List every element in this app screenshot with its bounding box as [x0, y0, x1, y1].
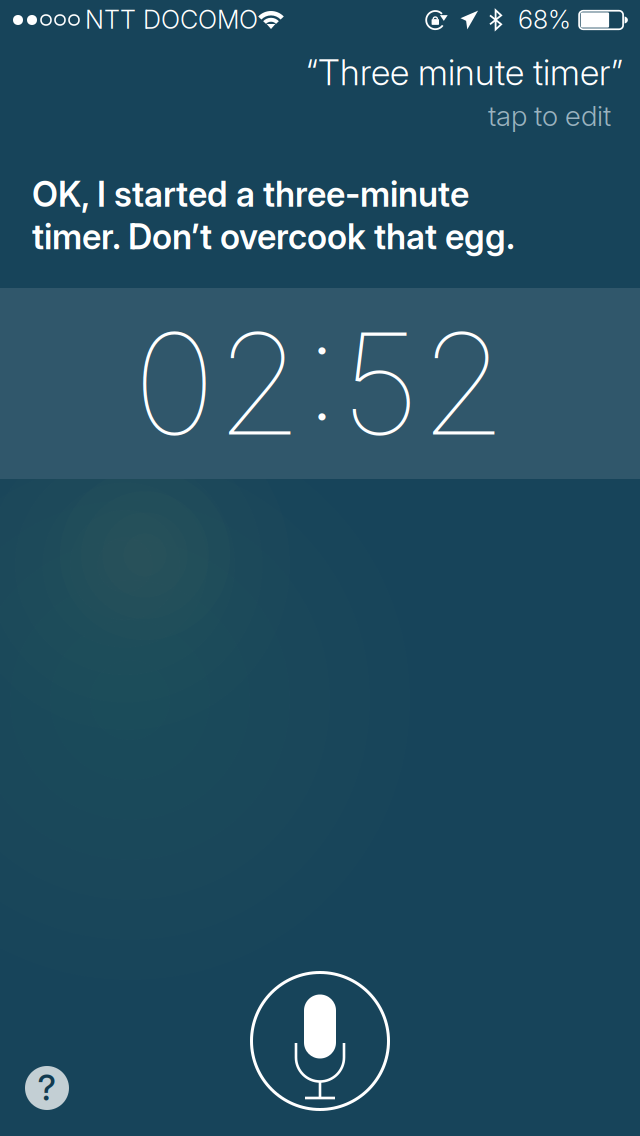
button[interactable]: Help [25, 1066, 69, 1110]
button[interactable]: Speak to Siri [250, 971, 390, 1111]
staticText: timer. Don’t overcook that egg. [32, 216, 515, 258]
staticText: tap to edit [488, 99, 611, 133]
staticText: ? [37, 1067, 56, 1109]
staticText: NTT DOCOMO [85, 4, 258, 35]
staticText: “Three minute timer” [306, 51, 623, 94]
button[interactable]: “Three minute timer” [0, 40, 640, 133]
staticText: OK, I started a three-minute [32, 174, 469, 215]
staticText: 68% [518, 4, 571, 35]
staticText: 02:52 [133, 299, 507, 468]
